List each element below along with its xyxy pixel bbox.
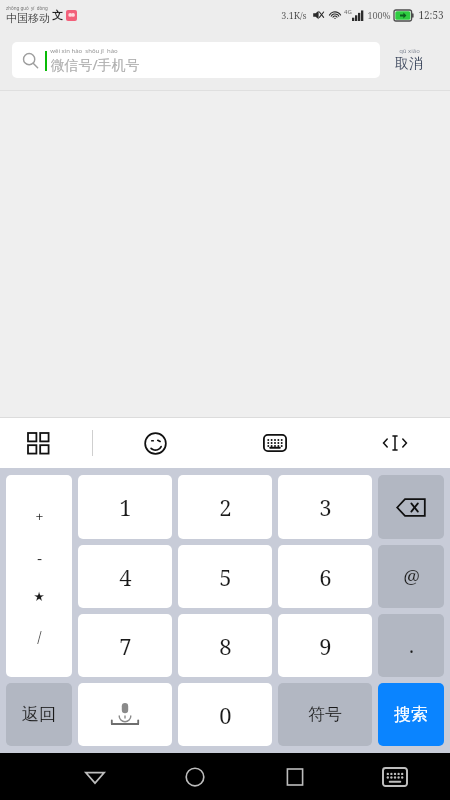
button[interactable]: 搜索 (378, 683, 444, 746)
button[interactable]: 8 (178, 614, 272, 677)
button[interactable]: Emoji (133, 421, 177, 465)
staticText: 中国移动 (6, 11, 50, 25)
button[interactable]: 返回 (6, 683, 72, 746)
staticText: 1 (119, 492, 132, 522)
button[interactable]: @ (378, 545, 444, 608)
button[interactable]: qǔ xiāo (380, 30, 438, 90)
staticText: 5 (219, 562, 232, 592)
button[interactable]: 9 (278, 614, 372, 677)
button[interactable]: 4 (78, 545, 172, 608)
staticText: 文 (52, 8, 63, 22)
button[interactable]: . (378, 614, 444, 677)
button[interactable]: 6 (278, 545, 372, 608)
button[interactable]: 0 (178, 683, 272, 746)
button[interactable]: wēi xìn hào shǒu jī hào (12, 42, 380, 78)
button[interactable]: 1 (78, 475, 172, 539)
button[interactable]: 符号 (278, 683, 372, 746)
button[interactable]: Move cursor (373, 421, 417, 465)
staticText: 4G (344, 8, 352, 16)
staticText: zhōng guó yí dòng (6, 5, 48, 11)
staticText: + (35, 506, 44, 526)
staticText: 12:53 (418, 8, 444, 22)
button[interactable]: Back (71, 753, 119, 800)
staticText: 100% (367, 9, 391, 21)
staticText: 返回 (22, 704, 56, 725)
button[interactable]: Symbols plus minus star slash (6, 475, 72, 677)
staticText: 微信号/手机号 (50, 55, 140, 74)
button[interactable]: 2 (178, 475, 272, 539)
staticText: 7 (119, 631, 132, 661)
button[interactable]: Backspace (378, 475, 444, 539)
staticText: @ (403, 564, 420, 589)
staticText: wēi xìn hào shǒu jī hào (50, 47, 118, 55)
staticText: 搜索 (394, 704, 428, 725)
staticText: 3 (319, 492, 332, 522)
staticText: 3.1K/s (281, 9, 307, 21)
staticText: 2 (219, 492, 232, 522)
staticText: - (37, 548, 42, 568)
button[interactable]: 3 (278, 475, 372, 539)
staticText: 9 (319, 631, 332, 661)
button[interactable]: Keyboard layouts (16, 421, 60, 465)
staticText: 4 (119, 562, 132, 592)
staticText: 8 (219, 631, 232, 661)
button[interactable]: Recents (271, 753, 319, 800)
staticText: 符号 (308, 704, 342, 725)
button[interactable]: Voice input (78, 683, 172, 746)
button[interactable]: 5 (178, 545, 272, 608)
staticText: . (409, 632, 414, 659)
staticText: / (37, 626, 42, 646)
button[interactable]: 7 (78, 614, 172, 677)
staticText: 取消 (395, 55, 423, 73)
staticText: 0 (219, 700, 232, 730)
staticText: ★ (33, 589, 45, 604)
button[interactable]: Home (171, 753, 219, 800)
button[interactable]: Switch keyboard (371, 753, 419, 800)
staticText: 6 (319, 562, 332, 592)
button[interactable]: Keyboard (253, 421, 297, 465)
staticText: qǔ xiāo (399, 47, 420, 55)
